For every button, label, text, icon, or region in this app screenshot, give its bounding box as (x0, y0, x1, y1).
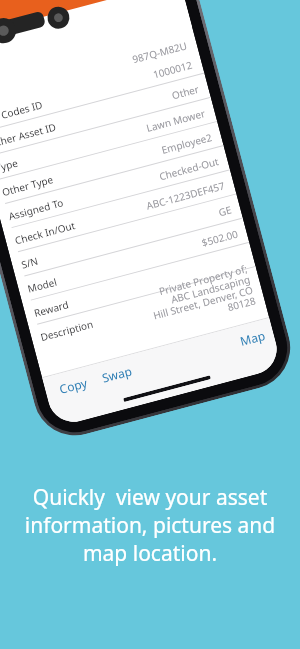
button[interactable]: Swap (100, 362, 134, 386)
staticText: Quickly view your asset information, pic… (0, 483, 300, 567)
button[interactable]: Other Asset ID (0, 73, 211, 158)
staticText: 987Q-M82U (131, 38, 189, 66)
staticText: Other Type (0, 172, 55, 199)
staticText: Other (170, 82, 201, 102)
staticText: Type (0, 155, 20, 175)
staticText: $502.00 (200, 227, 239, 250)
staticText: Private Property of; ABC Landscaping Hil… (145, 261, 257, 333)
staticText: Employee2 (160, 130, 214, 157)
staticText: Assigned To (7, 195, 65, 223)
staticText: Model (26, 274, 59, 296)
button[interactable]: Assigned To (0, 146, 230, 230)
button[interactable]: S/N (9, 194, 243, 279)
staticText: ABC-1223DEF457 (145, 178, 227, 213)
staticText: Description (39, 317, 95, 344)
staticText: S/N (20, 254, 40, 272)
button[interactable]: Model (16, 218, 249, 303)
button[interactable]: Map (238, 325, 275, 349)
button[interactable]: Description (29, 267, 262, 351)
staticText: GE (217, 202, 233, 219)
staticText: Check In/Out (13, 218, 77, 247)
staticText: Lawn Mower (145, 106, 207, 135)
button[interactable]: Bar Codes ID (0, 49, 205, 134)
staticText: Other Asset ID (0, 120, 58, 151)
staticText: Checked-Out (158, 154, 220, 183)
button[interactable]: Type (0, 98, 217, 182)
staticText: Bar Codes ID (0, 97, 45, 127)
button[interactable]: Reward (22, 243, 256, 327)
button[interactable]: Other Type (0, 122, 224, 206)
button[interactable]: Copy (57, 374, 90, 397)
staticText: Reward (32, 297, 71, 320)
staticText: 1000012 (151, 57, 194, 81)
button[interactable]: Check In/Out (3, 170, 237, 255)
